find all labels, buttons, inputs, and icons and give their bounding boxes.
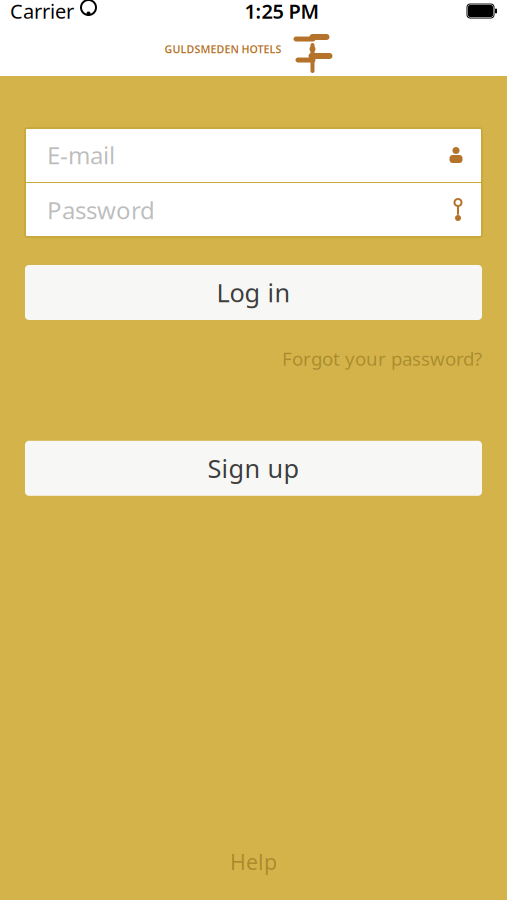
staticText: Forgot your password? (282, 346, 482, 371)
staticText: Sign up (207, 451, 299, 485)
staticText: 1:25 PM (244, 0, 319, 24)
button[interactable]: Help (210, 840, 297, 884)
staticText: GULDSMEDEN HOTELS (164, 42, 281, 56)
button[interactable]: Forgot your password? (282, 340, 482, 377)
staticText: Password (47, 194, 155, 226)
button[interactable]: Sign up (25, 441, 482, 496)
staticText: E-mail (47, 139, 115, 171)
staticText: Log in (216, 276, 290, 309)
staticText: Help (230, 848, 277, 876)
staticText: Carrier (10, 0, 74, 24)
button[interactable]: Log in (25, 265, 482, 320)
